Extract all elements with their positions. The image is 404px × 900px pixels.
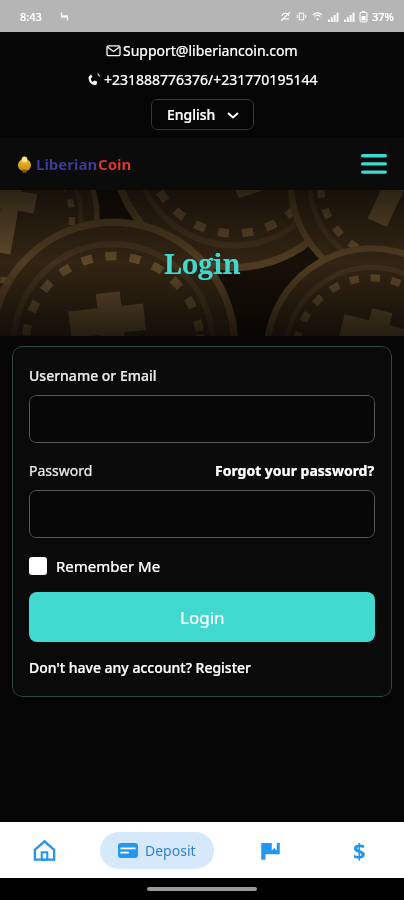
staticText: Login — [164, 245, 241, 282]
button[interactable]: Open menu — [356, 146, 392, 182]
button[interactable]: Deposit — [88, 822, 226, 878]
staticText: 8:43 — [20, 9, 42, 24]
staticText: English — [167, 105, 216, 124]
button[interactable]: Home — [0, 822, 88, 878]
staticText: Remember Me — [56, 556, 161, 576]
staticText: Password — [29, 461, 93, 480]
button[interactable]: Liberian — [16, 154, 132, 174]
button[interactable]: Login — [29, 592, 375, 642]
staticText: Support@liberiancoin.com — [123, 41, 298, 60]
staticText: Username or Email — [29, 366, 157, 385]
button[interactable]: Don't have any account? Register — [29, 658, 251, 677]
button[interactable]: English — [151, 99, 254, 130]
button[interactable]: Forgot your password? — [215, 461, 375, 480]
button[interactable]: Withdraw — [315, 822, 404, 878]
staticText: Login — [180, 606, 225, 629]
button[interactable] — [29, 490, 375, 538]
staticText: +231888776376/+231770195144 — [104, 70, 318, 89]
staticText: Deposit — [145, 841, 196, 860]
staticText: Liberian — [36, 154, 98, 174]
button[interactable]: Remember Me — [29, 556, 161, 576]
staticText: 37% — [372, 9, 394, 24]
button[interactable]: Messages — [226, 822, 315, 878]
button[interactable] — [29, 395, 375, 443]
staticText: Coin — [98, 154, 132, 174]
staticText: $ — [353, 835, 366, 865]
